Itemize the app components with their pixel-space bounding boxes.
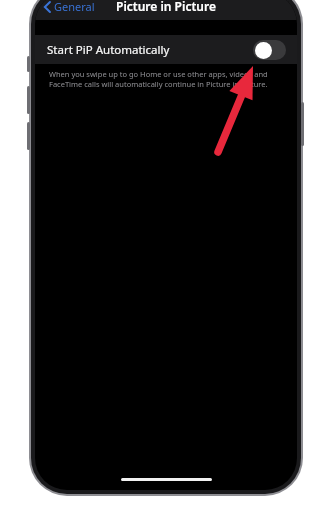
button[interactable]: General <box>41 0 98 17</box>
button[interactable]: Start PiP Automatically <box>35 35 297 64</box>
button[interactable]: Start PiP Automatically toggle <box>253 40 286 60</box>
staticText: Start PiP Automatically <box>47 42 170 58</box>
staticText: Picture in Picture <box>116 0 216 14</box>
staticText: General <box>54 0 95 14</box>
staticText: When you swipe up to go Home or use othe… <box>49 69 281 89</box>
